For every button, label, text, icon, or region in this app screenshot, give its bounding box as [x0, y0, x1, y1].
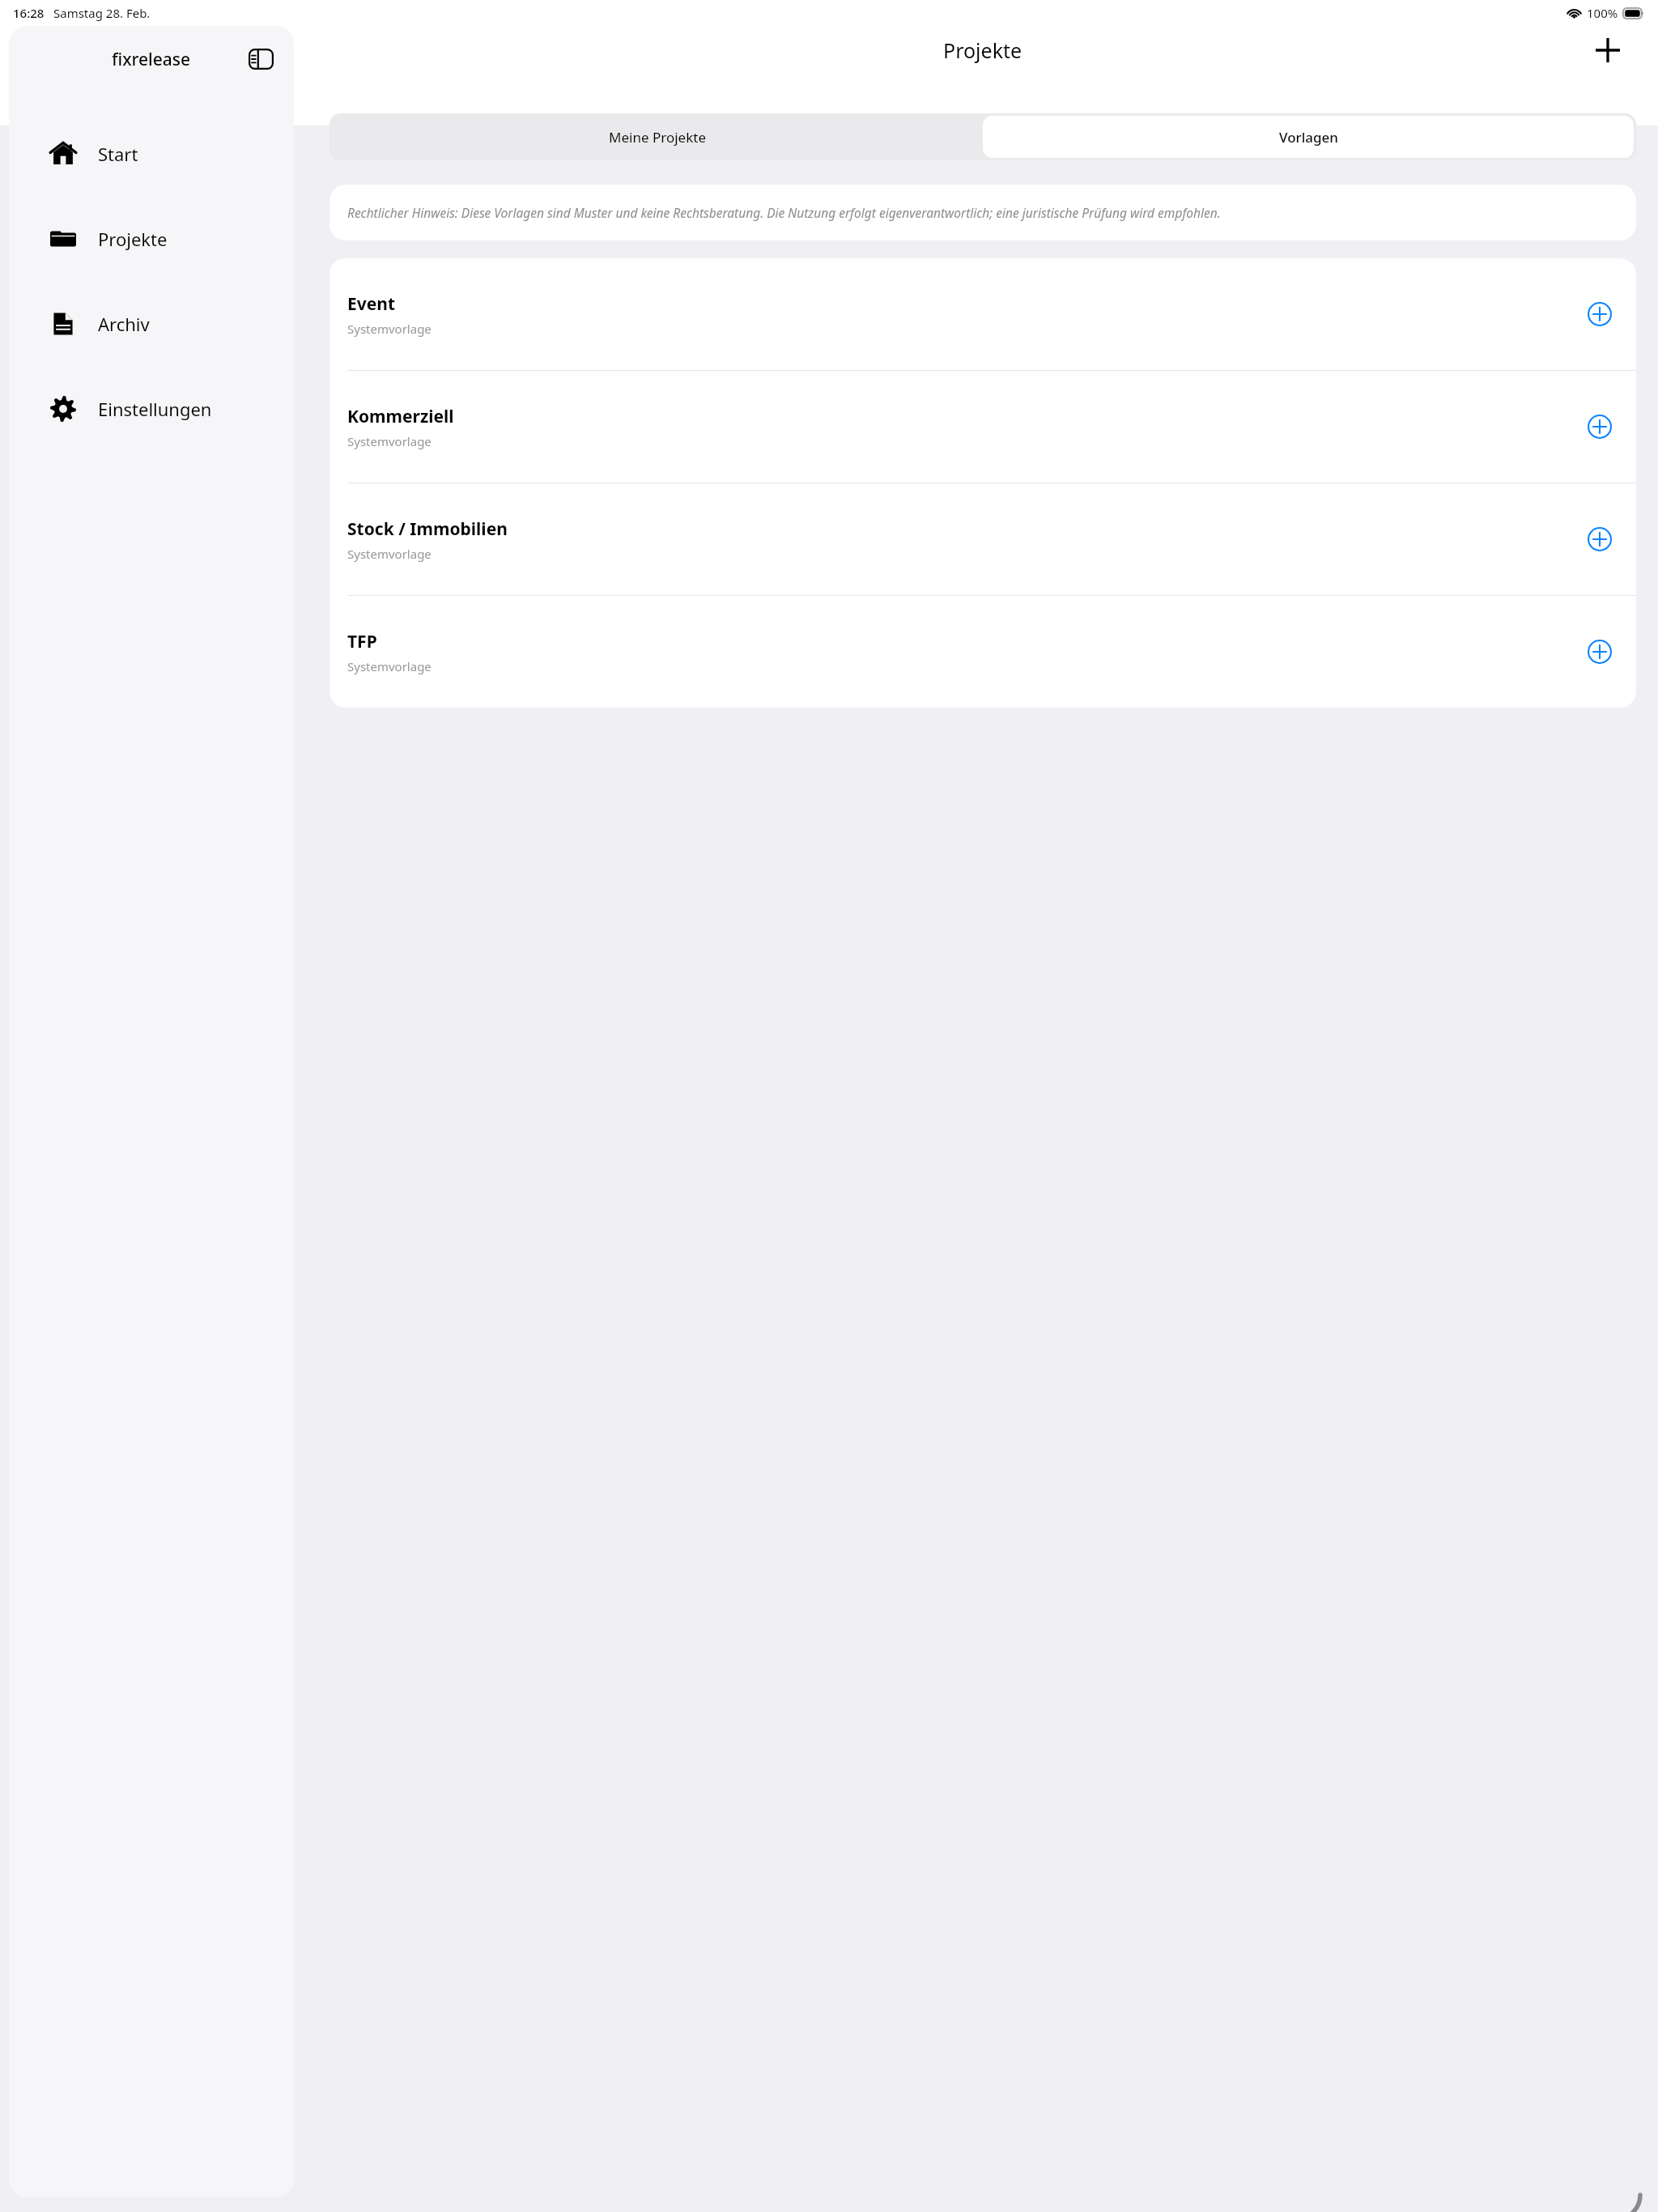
staticText: Systemvorlage	[347, 321, 432, 337]
button[interactable]: Vorlage hinzufügen	[1581, 633, 1618, 670]
staticText: Vorlagen	[1279, 128, 1338, 147]
button[interactable]: Event	[329, 258, 1636, 370]
staticText: Event	[347, 292, 396, 316]
button[interactable]: Vorlagen	[983, 116, 1634, 158]
button[interactable]: Einstellungen	[9, 366, 294, 451]
staticText: Systemvorlage	[347, 546, 432, 562]
staticText: Kommerziell	[347, 405, 454, 428]
staticText: Einstellungen	[98, 397, 212, 421]
staticText: Start	[98, 142, 138, 166]
staticText: Meine Projekte	[609, 128, 706, 147]
staticText: Samstag 28. Feb.	[53, 5, 151, 21]
button[interactable]: Meine Projekte	[332, 116, 983, 158]
staticText: Projekte	[98, 227, 168, 251]
button[interactable]: Vorlage hinzufügen	[1581, 521, 1618, 558]
staticText: Rechtlicher Hinweis: Diese Vorlagen sind…	[347, 204, 1221, 221]
button[interactable]: Start	[9, 111, 294, 196]
staticText: Archiv	[98, 312, 150, 336]
staticText: Projekte	[943, 36, 1022, 64]
button[interactable]: Archiv	[9, 281, 294, 366]
staticText: fixrelease	[112, 48, 191, 71]
button[interactable]: Projekte	[9, 196, 294, 281]
staticText: 16:28	[13, 5, 45, 21]
button[interactable]: Kommerziell	[329, 371, 1636, 483]
button[interactable]: Seitenleiste ein-/ausblenden	[242, 40, 279, 78]
button[interactable]: TFP	[329, 596, 1636, 708]
staticText: 100%	[1587, 5, 1618, 21]
button[interactable]: Vorlage hinzufügen	[1581, 408, 1618, 445]
button[interactable]: Stock / Immobilien	[329, 483, 1636, 595]
button[interactable]: Vorlage hinzufügen	[1581, 296, 1618, 333]
staticText: Systemvorlage	[347, 433, 432, 449]
staticText: Systemvorlage	[347, 658, 432, 674]
staticText: TFP	[347, 630, 377, 653]
staticText: Stock / Immobilien	[347, 517, 508, 541]
button[interactable]: Neues Projekt	[1579, 22, 1636, 79]
